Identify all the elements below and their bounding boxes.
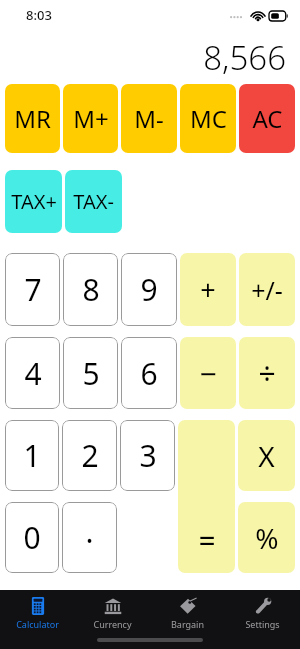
staticText: Settings	[245, 618, 280, 630]
staticText: TAX+	[11, 188, 57, 215]
other: Calculator	[29, 597, 47, 615]
button[interactable]: 0	[5, 502, 59, 573]
staticText: MC	[190, 102, 227, 135]
button[interactable]: 9	[121, 253, 177, 326]
button[interactable]: −	[180, 337, 236, 409]
other: Bargain	[179, 597, 197, 615]
staticText: M-	[134, 102, 164, 135]
button[interactable]: =	[178, 420, 235, 573]
button[interactable]: 2	[62, 420, 117, 491]
staticText: +	[200, 271, 216, 308]
staticText: M+	[73, 102, 109, 135]
staticText: X	[258, 437, 275, 475]
button[interactable]: Bargain	[150, 594, 225, 630]
staticText: Bargain	[171, 618, 204, 630]
staticText: 3	[139, 435, 157, 476]
staticText: ÷	[258, 353, 276, 394]
button[interactable]: MC	[180, 84, 236, 153]
button[interactable]: 7	[5, 253, 60, 326]
button[interactable]: Settings	[225, 594, 300, 630]
button[interactable]: 1	[5, 420, 59, 491]
staticText: TAX-	[73, 188, 114, 215]
staticText: 2	[81, 435, 99, 476]
button[interactable]: X	[238, 420, 295, 491]
button[interactable]: TAX-	[65, 170, 122, 233]
staticText: −	[199, 353, 217, 394]
staticText: 7	[24, 269, 42, 310]
button[interactable]: +/-	[239, 253, 295, 326]
staticText: +/-	[251, 273, 283, 307]
button[interactable]: +	[180, 253, 236, 326]
staticText: Currency	[93, 618, 132, 630]
staticText: 1	[23, 435, 41, 476]
button[interactable]: Calculator	[0, 594, 75, 630]
button[interactable]: 6	[121, 337, 177, 409]
staticText: 4	[24, 353, 42, 394]
staticText: 8	[82, 269, 100, 310]
staticText: Calculator	[16, 618, 59, 630]
staticText: 8,566	[203, 35, 286, 80]
staticText: AC	[252, 102, 283, 135]
button[interactable]: M-	[121, 84, 177, 153]
staticText: 5	[82, 353, 100, 394]
staticText: 9	[140, 269, 158, 310]
staticText: .	[85, 511, 94, 552]
staticText: 0	[23, 517, 41, 558]
button[interactable]: AC	[239, 84, 295, 153]
staticText: 6	[140, 353, 158, 394]
other: Settings	[254, 597, 272, 615]
other: Currency	[104, 597, 122, 615]
button[interactable]: .	[62, 502, 117, 573]
staticText: =	[198, 520, 216, 561]
button[interactable]: TAX+	[5, 170, 62, 233]
button[interactable]: Currency	[75, 594, 150, 630]
button[interactable]: %	[238, 502, 295, 573]
button[interactable]: MR	[5, 84, 60, 153]
staticText: MR	[14, 102, 51, 135]
button[interactable]: 5	[63, 337, 118, 409]
button[interactable]: ÷	[239, 337, 295, 409]
button[interactable]: M+	[63, 84, 118, 153]
staticText: 8:03	[26, 6, 52, 24]
button[interactable]: 3	[120, 420, 175, 491]
button[interactable]: 4	[5, 337, 60, 409]
button[interactable]: 8	[63, 253, 118, 326]
staticText: %	[255, 519, 279, 557]
